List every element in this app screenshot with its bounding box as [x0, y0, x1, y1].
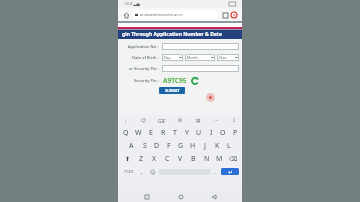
button[interactable]: Tabs [221, 11, 229, 19]
button[interactable]: V [174, 152, 187, 165]
staticText: R [161, 128, 166, 138]
button[interactable]: Keyboard tool [157, 116, 167, 126]
button[interactable]: M [213, 152, 226, 165]
staticText: V [178, 154, 183, 164]
staticText: -Day- [163, 55, 172, 60]
staticText: ⬆ [125, 155, 131, 162]
staticText: D [154, 141, 160, 151]
button[interactable]: Y [181, 126, 193, 139]
staticText: K [215, 141, 220, 151]
button[interactable]: C [161, 152, 174, 165]
staticText: W [135, 128, 142, 138]
button[interactable]: , [137, 165, 147, 178]
button[interactable]: Keyboard tool [175, 116, 185, 126]
button[interactable]: ☺ [147, 165, 159, 178]
staticText: Y [185, 128, 189, 138]
button[interactable] [162, 65, 239, 72]
staticText: ?123 [124, 169, 134, 175]
button[interactable]: Keyboard tool [139, 116, 149, 126]
staticText: ⌫ [229, 155, 238, 162]
button[interactable]: Menu [229, 10, 238, 19]
button[interactable]: ⬆ [120, 152, 135, 165]
staticText: S [143, 141, 147, 151]
button[interactable]: Keyboard tool [229, 116, 239, 126]
staticText: ☺ [150, 169, 156, 175]
staticText: J [204, 141, 206, 151]
staticText: Q [123, 128, 129, 138]
button[interactable]: P [229, 126, 241, 139]
button[interactable]: -Month- [185, 54, 215, 61]
staticText: A [129, 141, 134, 151]
staticText: ⚙ [178, 118, 183, 124]
staticText: P [233, 128, 238, 138]
button[interactable]: Back [208, 191, 219, 202]
staticText: gin Through Application Number & Date [122, 31, 222, 38]
button[interactable]: Home [122, 11, 130, 19]
button[interactable]: Recents [141, 191, 152, 202]
staticText: ↵ [228, 169, 233, 175]
staticText: A9TC95 [163, 76, 187, 85]
staticText: U [196, 128, 202, 138]
button[interactable]: F [163, 139, 175, 152]
button[interactable]: I [205, 126, 217, 139]
staticText: . [215, 168, 217, 176]
button[interactable]: Keyboard tool [211, 116, 221, 126]
button[interactable]: D [151, 139, 163, 152]
button[interactable]: E [145, 126, 157, 139]
staticText: ☺ [141, 118, 147, 124]
staticText: Application No : [128, 44, 159, 49]
button[interactable]: H [187, 139, 199, 152]
staticText: ▤ [196, 118, 201, 124]
staticText: 12:4 ▂▄ [124, 1, 140, 7]
staticText: I [210, 128, 213, 138]
staticText: Date of Birth : [132, 55, 159, 60]
button[interactable]: X [148, 152, 161, 165]
staticText: X [152, 154, 157, 164]
button[interactable]: -Day- [162, 54, 183, 61]
button[interactable]: L [223, 139, 235, 152]
button[interactable]: O [217, 126, 229, 139]
button[interactable]: N [200, 152, 213, 165]
button[interactable]: Home [175, 191, 186, 202]
button[interactable]: J [199, 139, 211, 152]
staticText: C [165, 154, 170, 164]
staticText: Security Pin : [134, 78, 159, 83]
staticText: ‹ [125, 118, 127, 125]
button[interactable]: . [211, 165, 221, 178]
staticText: ⇩ [232, 118, 237, 124]
staticText: E [149, 128, 153, 138]
staticText: N [204, 154, 210, 164]
button[interactable]: Q [119, 126, 132, 139]
button[interactable]: Refresh captcha [190, 76, 200, 86]
button[interactable]: ⌫ [226, 152, 240, 165]
staticText: er Security Pin : [129, 66, 159, 71]
button[interactable]: Keyboard tool [121, 116, 131, 126]
staticText: GIF [158, 118, 166, 125]
button[interactable]: K [211, 139, 223, 152]
staticText: amdsatdmissions.ac.in [140, 12, 183, 17]
button[interactable]: S [138, 139, 151, 152]
staticText: ⋯ [214, 118, 219, 124]
button[interactable]: amdsatdmissions.ac.in [132, 10, 218, 19]
button[interactable]: U [193, 126, 205, 139]
staticText: B [191, 154, 196, 164]
staticText: Z [139, 154, 144, 164]
staticText: H [190, 141, 196, 151]
button[interactable]: SUBMIT [159, 87, 185, 94]
staticText: T [173, 128, 177, 138]
button[interactable]: A [125, 139, 138, 152]
staticText: M [216, 154, 223, 164]
button[interactable]: R [157, 126, 169, 139]
button[interactable]: T [169, 126, 181, 139]
staticText: -Month- [186, 55, 199, 60]
button[interactable]: Keyboard tool [193, 116, 203, 126]
button[interactable]: G [175, 139, 187, 152]
button[interactable]: B [187, 152, 200, 165]
button[interactable]: Z [135, 152, 148, 165]
button[interactable]: W [132, 126, 145, 139]
button[interactable]: ?123 [121, 165, 137, 178]
button[interactable]: Enter [221, 168, 239, 175]
button[interactable]: -Year- [217, 54, 239, 61]
button[interactable] [162, 43, 239, 50]
